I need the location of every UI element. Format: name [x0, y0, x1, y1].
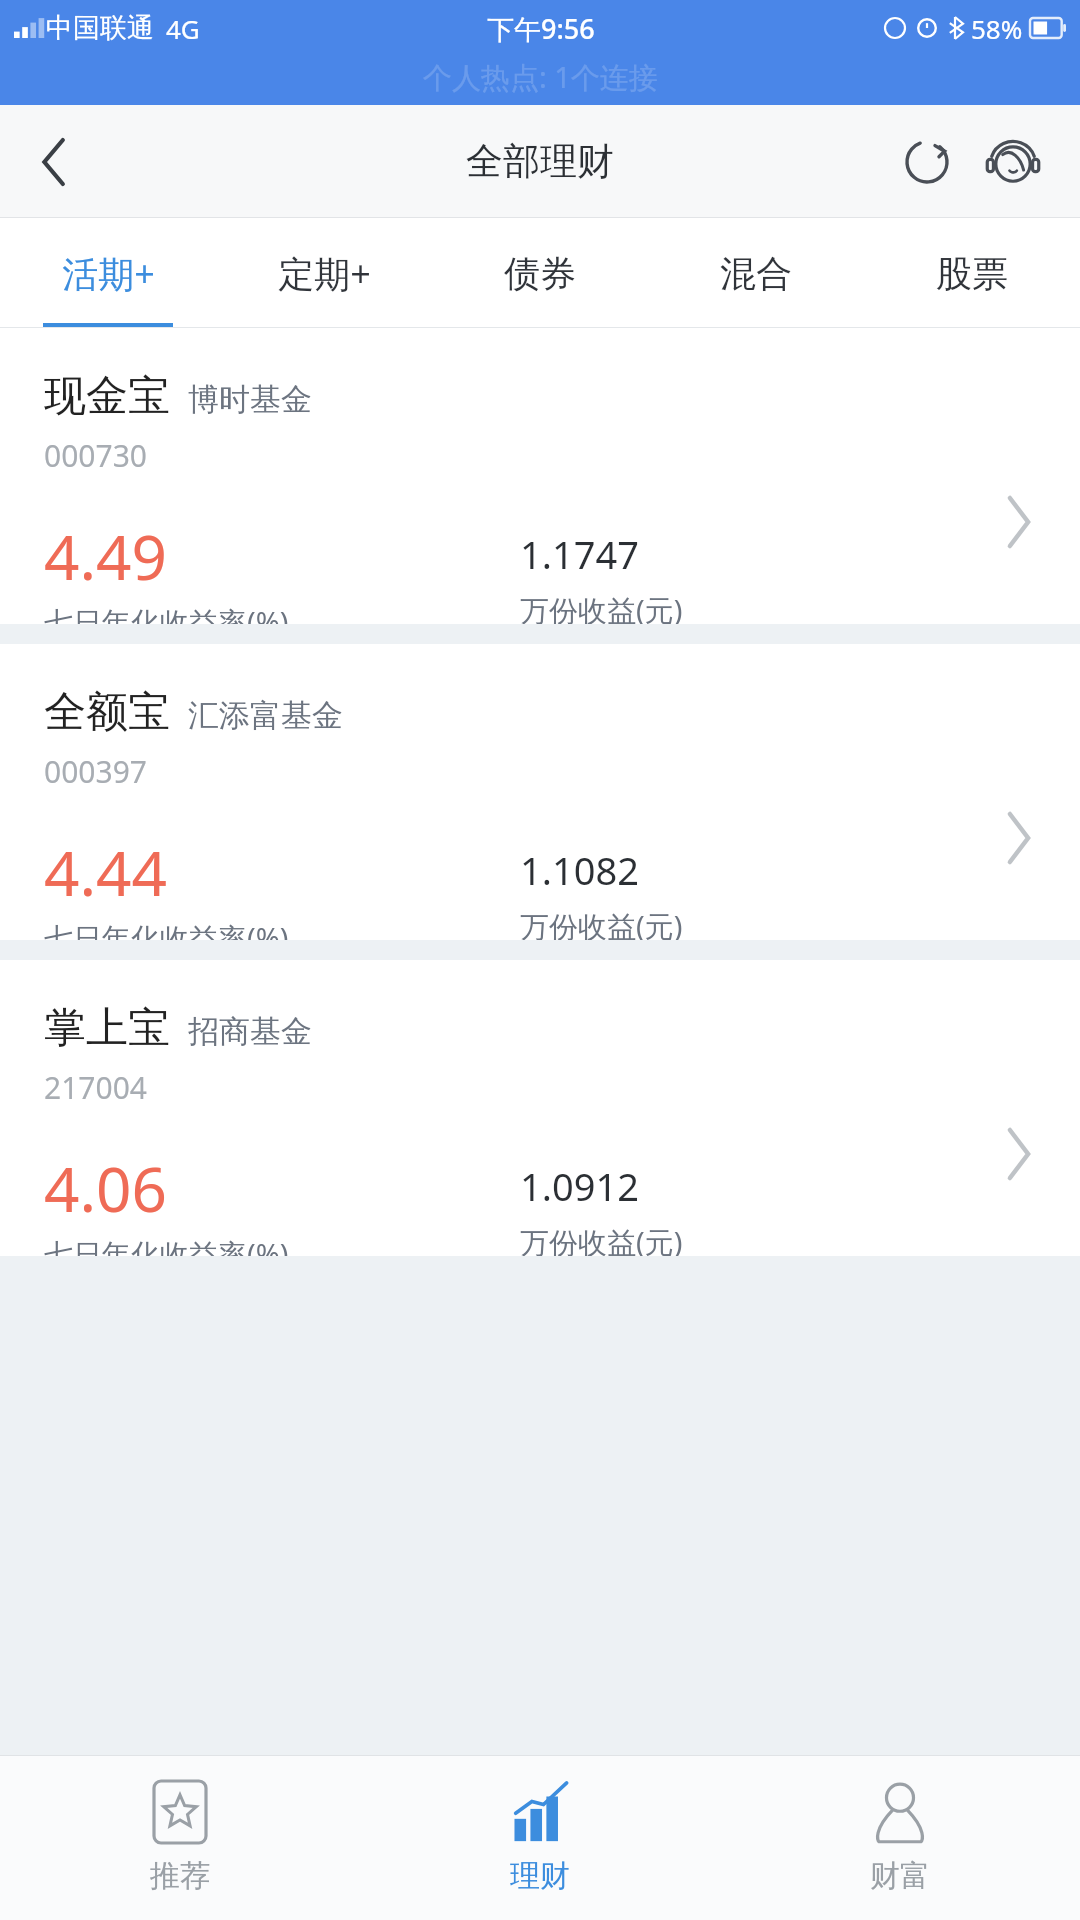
staticText: 全部理财: [466, 138, 614, 185]
button[interactable]: 混合: [648, 218, 864, 328]
button[interactable]: 财富: [720, 1756, 1080, 1920]
staticText: 4.49: [44, 514, 168, 598]
staticText: 债券: [504, 251, 576, 296]
staticText: 七日年化收益率(%): [44, 602, 289, 624]
staticText: 财富: [870, 1857, 930, 1895]
staticText: 现金宝: [44, 370, 170, 423]
staticText: 万份收益(元): [520, 590, 683, 624]
button[interactable]: 掌上宝: [0, 960, 1080, 1256]
button[interactable]: 理财: [360, 1756, 720, 1920]
staticText: 58%: [971, 11, 1023, 46]
staticText: 理财: [510, 1857, 570, 1895]
staticText: 4.06: [44, 1146, 168, 1230]
button[interactable]: 定期+: [216, 218, 432, 328]
staticText: 招商基金: [188, 1012, 312, 1051]
button[interactable]: 全额宝: [0, 644, 1080, 940]
button[interactable]: Refresh: [884, 119, 970, 205]
staticText: 定期+: [278, 249, 371, 298]
staticText: 股票: [936, 251, 1008, 296]
staticText: 万份收益(元): [520, 1222, 683, 1256]
button[interactable]: 推荐: [0, 1756, 360, 1920]
staticText: 博时基金: [188, 380, 312, 419]
staticText: 000730: [44, 435, 147, 476]
staticText: 个人热点: 1个连接: [423, 57, 658, 97]
staticText: 推荐: [150, 1857, 210, 1895]
staticText: 七日年化收益率(%): [44, 1234, 289, 1256]
staticText: 万份收益(元): [520, 906, 683, 940]
staticText: 4G: [166, 11, 200, 46]
staticText: 000397: [44, 751, 147, 792]
staticText: 混合: [720, 251, 792, 296]
staticText: 1.1082: [520, 844, 639, 896]
button[interactable]: 债券: [432, 218, 648, 328]
staticText: 活期+: [62, 249, 155, 298]
staticText: 下午9:56: [487, 10, 595, 47]
button[interactable]: Back: [0, 105, 110, 218]
button[interactable]: 现金宝: [0, 328, 1080, 624]
button[interactable]: Customer service: [970, 119, 1056, 205]
button[interactable]: 股票: [864, 218, 1080, 328]
staticText: 4.44: [44, 830, 168, 914]
staticText: 中国联通: [46, 11, 154, 45]
staticText: 七日年化收益率(%): [44, 918, 289, 940]
staticText: 全额宝: [44, 686, 170, 739]
staticText: 1.0912: [520, 1160, 639, 1212]
button[interactable]: 活期+: [0, 218, 216, 328]
staticText: 217004: [44, 1067, 147, 1108]
staticText: 掌上宝: [44, 1002, 170, 1055]
staticText: 汇添富基金: [188, 696, 343, 735]
staticText: 1.1747: [520, 528, 639, 580]
